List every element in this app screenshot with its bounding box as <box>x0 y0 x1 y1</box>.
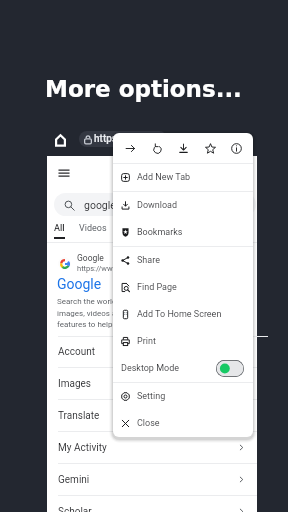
button[interactable]: Add To Home Screen <box>113 301 253 328</box>
button[interactable]: Add New Tab <box>113 164 253 191</box>
staticText: Download <box>137 200 178 211</box>
button[interactable]: google <box>54 193 256 216</box>
staticText: https://www.google.com <box>94 133 167 145</box>
staticText: Account <box>58 346 96 358</box>
staticText: Google <box>77 253 104 263</box>
button[interactable]: Find Page <box>113 274 253 301</box>
staticText: Bookmarks <box>137 227 183 238</box>
button[interactable]: Images <box>121 223 151 234</box>
button[interactable]: Share <box>113 247 253 274</box>
staticText: Translate <box>58 410 100 422</box>
staticText: Add To Home Screen <box>137 309 222 320</box>
button[interactable]: Menu <box>58 167 70 179</box>
button[interactable]: Bookmark <box>199 137 221 159</box>
staticText: Find Page <box>137 282 177 293</box>
button[interactable]: Desktop Mode <box>113 355 253 382</box>
button[interactable]: Videos <box>79 223 107 234</box>
button[interactable]: Forward <box>119 137 141 159</box>
button[interactable]: Bookmarks <box>113 219 253 246</box>
staticText: Print <box>137 336 156 347</box>
button[interactable]: Google <box>57 276 102 292</box>
staticText: Desktop Mode <box>121 363 179 374</box>
button[interactable]: Print <box>113 328 253 355</box>
button[interactable]: Gemini <box>47 464 257 495</box>
button[interactable]: Setting <box>113 383 253 410</box>
staticText: Close <box>137 418 160 429</box>
button[interactable]: Account <box>47 336 257 367</box>
button[interactable]: Reload <box>146 137 168 159</box>
staticText: https://www.google.com <box>77 264 160 273</box>
staticText: More options... <box>45 76 242 103</box>
staticText: Search the world's information, includin… <box>57 297 241 329</box>
button[interactable]: All <box>54 223 65 234</box>
staticText: My Activity <box>58 442 107 454</box>
staticText: Setting <box>137 391 166 402</box>
button[interactable]: Scholar <box>47 496 257 512</box>
staticText: google <box>84 199 116 211</box>
button[interactable]: Download <box>113 192 253 219</box>
button[interactable]: Page info <box>225 137 247 159</box>
button[interactable]: Desktop mode toggle <box>216 360 244 377</box>
staticText: Images <box>58 378 92 390</box>
button[interactable]: Close <box>113 410 253 437</box>
button[interactable]: https://www.google.com <box>79 131 167 147</box>
staticText: Gemini <box>58 474 90 486</box>
button[interactable]: Download <box>172 137 194 159</box>
button[interactable]: Images <box>47 368 257 399</box>
staticText: Share <box>137 255 160 266</box>
button[interactable]: Home <box>55 134 66 147</box>
button[interactable]: Translate <box>47 400 257 431</box>
staticText: Add New Tab <box>137 172 191 183</box>
button[interactable]: My Activity <box>47 432 257 463</box>
staticText: Scholar <box>58 506 92 512</box>
